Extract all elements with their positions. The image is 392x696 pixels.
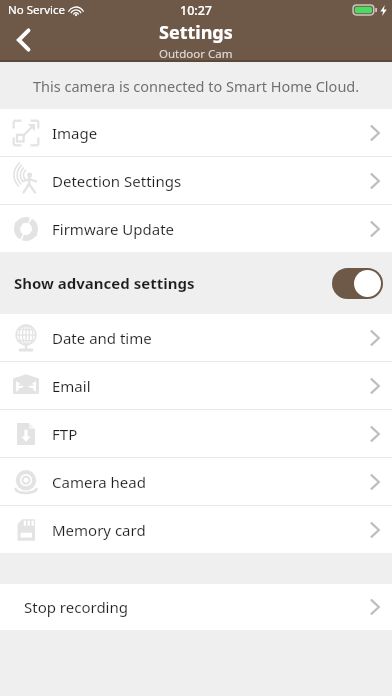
button[interactable]: Detection Settings bbox=[0, 157, 392, 204]
other: Show advanced settings toggle bbox=[332, 268, 383, 299]
button[interactable]: Date and time bbox=[0, 314, 392, 361]
button[interactable]: FTP bbox=[0, 410, 392, 457]
button[interactable]: Back bbox=[0, 20, 48, 60]
staticText: FTP bbox=[52, 424, 358, 444]
button[interactable]: Stop recording bbox=[0, 584, 392, 630]
staticText: Email bbox=[52, 376, 358, 396]
staticText: Image bbox=[52, 123, 358, 143]
staticText: Memory card bbox=[52, 520, 358, 540]
button[interactable]: Email bbox=[0, 362, 392, 409]
button[interactable]: Firmware Update bbox=[0, 205, 392, 252]
staticText: This camera is connected to Smart Home C… bbox=[33, 76, 360, 96]
staticText: Outdoor Cam bbox=[159, 46, 233, 60]
staticText: Date and time bbox=[52, 328, 358, 348]
staticText: Firmware Update bbox=[52, 219, 358, 239]
staticText: Camera head bbox=[52, 472, 358, 492]
staticText: Show advanced settings bbox=[14, 273, 195, 293]
staticText: 10:27 bbox=[180, 2, 213, 19]
button[interactable]: Camera head bbox=[0, 458, 392, 505]
button[interactable]: Memory card bbox=[0, 506, 392, 553]
staticText: Stop recording bbox=[24, 597, 358, 617]
staticText: No Service bbox=[8, 2, 66, 18]
button[interactable]: Show advanced settings bbox=[0, 252, 392, 314]
staticText: Settings bbox=[159, 20, 233, 45]
staticText: Detection Settings bbox=[52, 171, 358, 191]
button[interactable]: Image bbox=[0, 109, 392, 156]
